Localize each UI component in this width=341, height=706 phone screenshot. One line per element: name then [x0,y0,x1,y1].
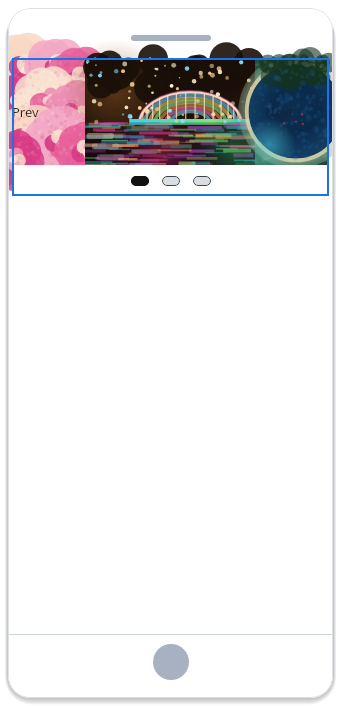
button[interactable]: Slide 3 [193,176,211,186]
button[interactable]: Slide 2 [162,176,180,186]
button[interactable]: Home [153,644,189,680]
staticText: Next [265,103,294,121]
staticText: Prev [12,103,39,121]
button[interactable]: Next [255,58,329,165]
button[interactable]: Slide 1 [131,176,149,186]
button[interactable]: Prev [12,58,85,165]
button[interactable]: Current photo [85,58,255,165]
